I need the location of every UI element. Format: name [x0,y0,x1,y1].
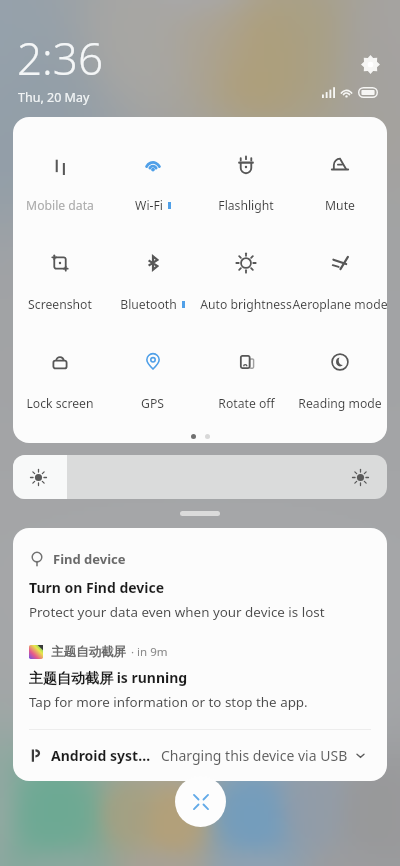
staticText: GPS [141,395,164,412]
staticText: Mobile data [26,197,94,214]
button[interactable]: Reading mode [293,334,387,433]
staticText: 2:36 [17,28,104,88]
button[interactable]: GPS [106,334,199,433]
staticText: 主题自动截屏 is running [29,668,188,687]
button[interactable]: Find device [13,528,387,621]
staticText: Lock screen [26,395,94,412]
button[interactable]: Close [175,776,226,827]
staticText: Bluetooth [120,296,177,313]
button[interactable]: Mobile data [13,136,106,235]
button[interactable]: 主题自动截屏 [13,644,387,711]
staticText: Flashlight [218,197,274,214]
button[interactable]: Screenshot [13,235,106,334]
button[interactable]: Aeroplane mode [293,235,387,334]
staticText: Wi-Fi [135,197,163,214]
staticText: 主题自动截屏 [51,644,126,660]
button[interactable]: Lock screen [13,334,106,433]
button[interactable]: Settings [355,49,385,79]
staticText: Tap for more information or to stop the … [29,693,308,711]
staticText: Screenshot [28,296,92,313]
button[interactable]: Bluetooth [106,235,199,334]
button[interactable]: Rotate off [199,334,293,433]
button[interactable]: Mute [293,136,387,235]
button[interactable]: Android syst… [13,730,387,781]
staticText: Turn on Find device [29,578,165,597]
staticText: Auto brightness [200,296,292,313]
staticText: Mute [325,197,355,214]
staticText: Thu, 20 May [18,89,90,106]
button[interactable]: Flashlight [199,136,293,235]
button[interactable]: Brightness [13,455,387,499]
button[interactable]: Wi-Fi [106,136,199,235]
staticText: Find device [53,550,126,568]
button[interactable]: Auto brightness [199,235,293,334]
staticText: Reading mode [298,395,382,412]
staticText: Android syst… [51,746,151,765]
staticText: · in 9m [131,644,168,660]
staticText: Protect your data even when your device … [29,603,325,621]
staticText: Rotate off [218,395,275,412]
staticText: Aeroplane mode [292,296,387,313]
staticText: Charging this device via USB [161,746,348,765]
